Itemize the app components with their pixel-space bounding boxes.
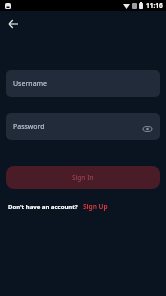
staticText: 11:16 [146,1,163,10]
staticText: Sign Up [83,202,108,211]
button[interactable]: Sign In [6,166,160,189]
staticText: Don't have an account? [8,203,78,211]
button[interactable]: Password [6,113,160,140]
button[interactable]: Username [6,70,160,97]
staticText: Password [13,122,45,132]
button[interactable]: Sign Up [83,202,108,211]
staticText: Username [13,79,48,89]
button[interactable] [5,16,21,32]
staticText: Sign In [72,173,94,182]
